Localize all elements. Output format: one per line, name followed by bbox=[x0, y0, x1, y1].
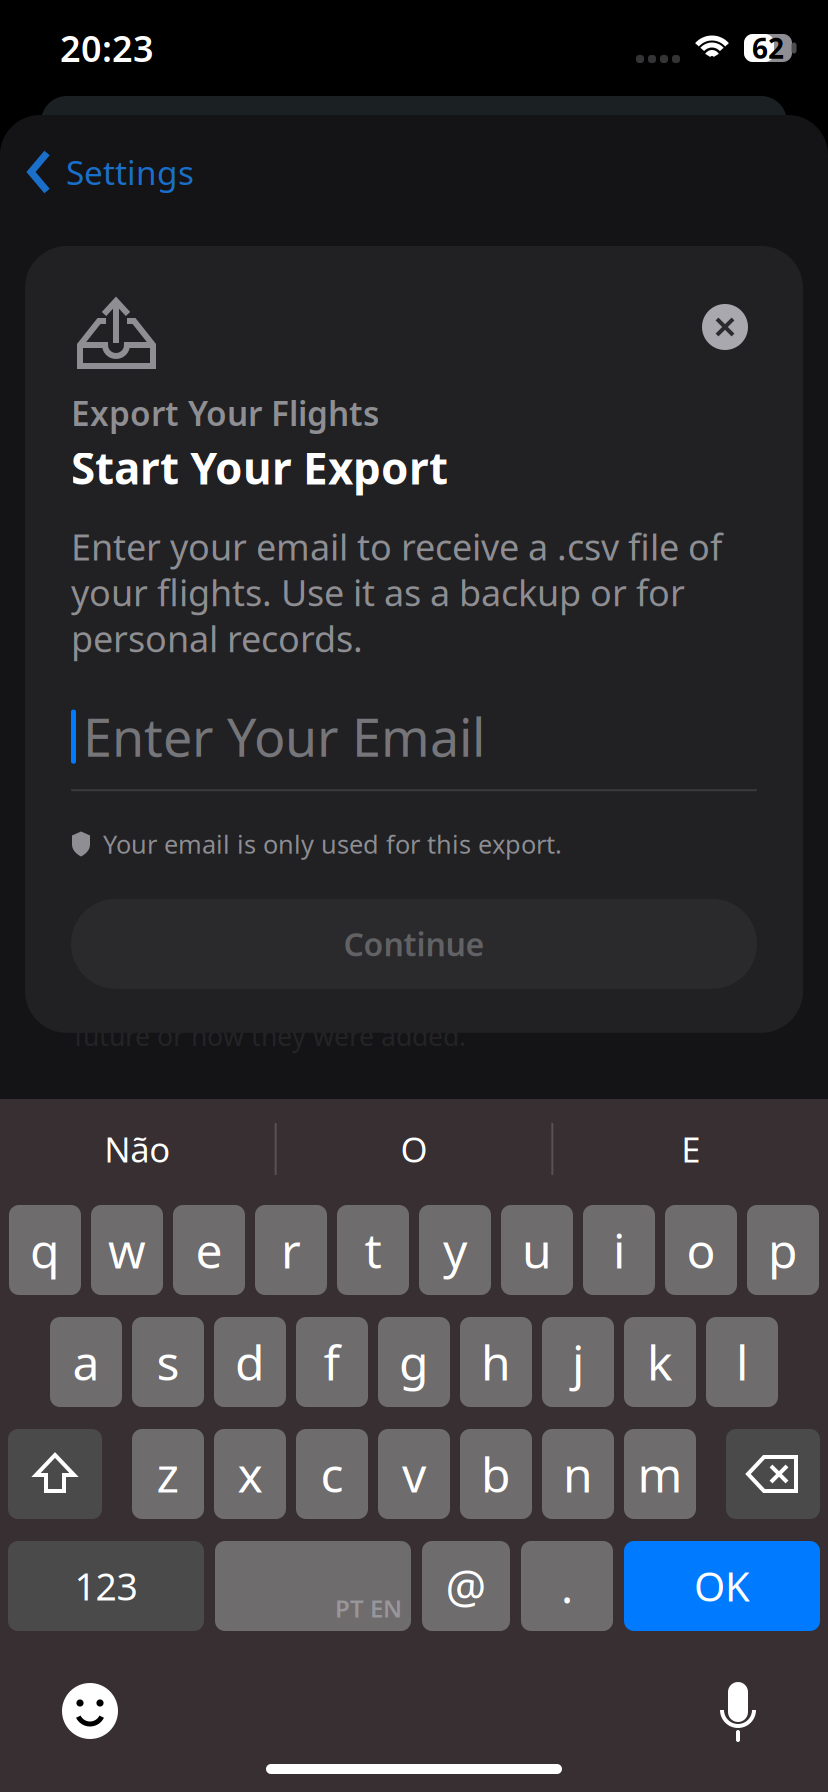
button[interactable]: n bbox=[542, 1429, 614, 1519]
staticText: w bbox=[108, 1218, 146, 1282]
button[interactable]: Space bbox=[215, 1541, 411, 1631]
button[interactable]: . bbox=[521, 1541, 613, 1631]
button[interactable]: d bbox=[214, 1317, 286, 1407]
staticText: e bbox=[195, 1218, 222, 1282]
staticText: p bbox=[768, 1218, 798, 1282]
staticText: Export Your Flights bbox=[71, 391, 379, 435]
staticText: Continue bbox=[343, 923, 484, 965]
staticText: Your email is only used for this export. bbox=[103, 827, 562, 861]
staticText: Enter Your Email bbox=[83, 702, 485, 771]
button[interactable]: g bbox=[378, 1317, 450, 1407]
staticText: b bbox=[481, 1442, 511, 1506]
button[interactable]: z bbox=[132, 1429, 204, 1519]
button[interactable]: 123 bbox=[8, 1541, 204, 1631]
staticText: m bbox=[637, 1442, 682, 1506]
staticText: z bbox=[156, 1442, 179, 1506]
staticText: n bbox=[563, 1442, 593, 1506]
staticText: a bbox=[72, 1330, 99, 1394]
button[interactable]: Não bbox=[0, 1099, 275, 1199]
staticText: Não bbox=[104, 1126, 170, 1172]
staticText: O bbox=[400, 1126, 427, 1172]
button[interactable]: k bbox=[624, 1317, 696, 1407]
staticText: i bbox=[613, 1218, 625, 1282]
button[interactable]: Settings bbox=[0, 137, 194, 207]
button[interactable]: m bbox=[624, 1429, 696, 1519]
button[interactable]: q bbox=[9, 1205, 81, 1295]
staticText: t bbox=[364, 1218, 381, 1282]
button[interactable]: w bbox=[91, 1205, 163, 1295]
button[interactable]: E bbox=[553, 1099, 828, 1199]
staticText: x bbox=[237, 1442, 262, 1506]
button[interactable]: l bbox=[706, 1317, 778, 1407]
staticText: r bbox=[281, 1218, 301, 1282]
staticText: 62 bbox=[752, 29, 784, 67]
staticText: f bbox=[323, 1330, 340, 1394]
button[interactable]: j bbox=[542, 1317, 614, 1407]
staticText: E bbox=[681, 1126, 700, 1172]
button[interactable]: OK bbox=[624, 1541, 820, 1631]
button[interactable]: f bbox=[296, 1317, 368, 1407]
staticText: Start Your Export bbox=[71, 438, 448, 497]
button[interactable]: Emoji bbox=[62, 1683, 118, 1739]
staticText: q bbox=[30, 1218, 60, 1282]
button[interactable]: h bbox=[460, 1317, 532, 1407]
staticText: h bbox=[481, 1330, 511, 1394]
button[interactable]: u bbox=[501, 1205, 573, 1295]
staticText: @ bbox=[445, 1556, 486, 1616]
button[interactable]: Continue bbox=[71, 899, 757, 989]
button[interactable]: @ bbox=[422, 1541, 510, 1631]
staticText: 123 bbox=[74, 1561, 137, 1611]
button[interactable]: Close bbox=[702, 304, 748, 350]
staticText: k bbox=[647, 1330, 673, 1394]
button[interactable]: v bbox=[378, 1429, 450, 1519]
button[interactable]: a bbox=[50, 1317, 122, 1407]
button[interactable]: o bbox=[665, 1205, 737, 1295]
staticText: l bbox=[736, 1330, 748, 1394]
staticText: u bbox=[522, 1218, 552, 1282]
staticText: future or how they were added. bbox=[74, 1018, 466, 1053]
staticText: j bbox=[572, 1330, 584, 1394]
staticText: y bbox=[443, 1218, 467, 1282]
button[interactable]: t bbox=[337, 1205, 409, 1295]
button[interactable]: i bbox=[583, 1205, 655, 1295]
staticText: s bbox=[156, 1330, 179, 1394]
button[interactable]: O bbox=[277, 1099, 551, 1199]
button[interactable]: Delete bbox=[726, 1429, 820, 1519]
button[interactable]: p bbox=[747, 1205, 819, 1295]
button[interactable]: s bbox=[132, 1317, 204, 1407]
button[interactable]: b bbox=[460, 1429, 532, 1519]
button[interactable]: r bbox=[255, 1205, 327, 1295]
staticText: Settings bbox=[66, 150, 194, 194]
button[interactable]: Dictate bbox=[714, 1679, 762, 1743]
button[interactable]: c bbox=[296, 1429, 368, 1519]
staticText: g bbox=[399, 1330, 429, 1394]
staticText: 20:23 bbox=[60, 24, 154, 72]
staticText: PT EN bbox=[335, 1592, 402, 1624]
button[interactable]: e bbox=[173, 1205, 245, 1295]
button[interactable]: y bbox=[419, 1205, 491, 1295]
staticText: Enter your email to receive a .csv file … bbox=[71, 523, 722, 662]
button[interactable]: x bbox=[214, 1429, 286, 1519]
staticText: . bbox=[561, 1556, 573, 1616]
staticText: d bbox=[235, 1330, 265, 1394]
staticText: o bbox=[686, 1218, 715, 1282]
staticText: v bbox=[402, 1442, 426, 1506]
staticText: c bbox=[320, 1442, 343, 1506]
button[interactable]: Shift bbox=[8, 1429, 102, 1519]
staticText: OK bbox=[694, 1559, 750, 1612]
